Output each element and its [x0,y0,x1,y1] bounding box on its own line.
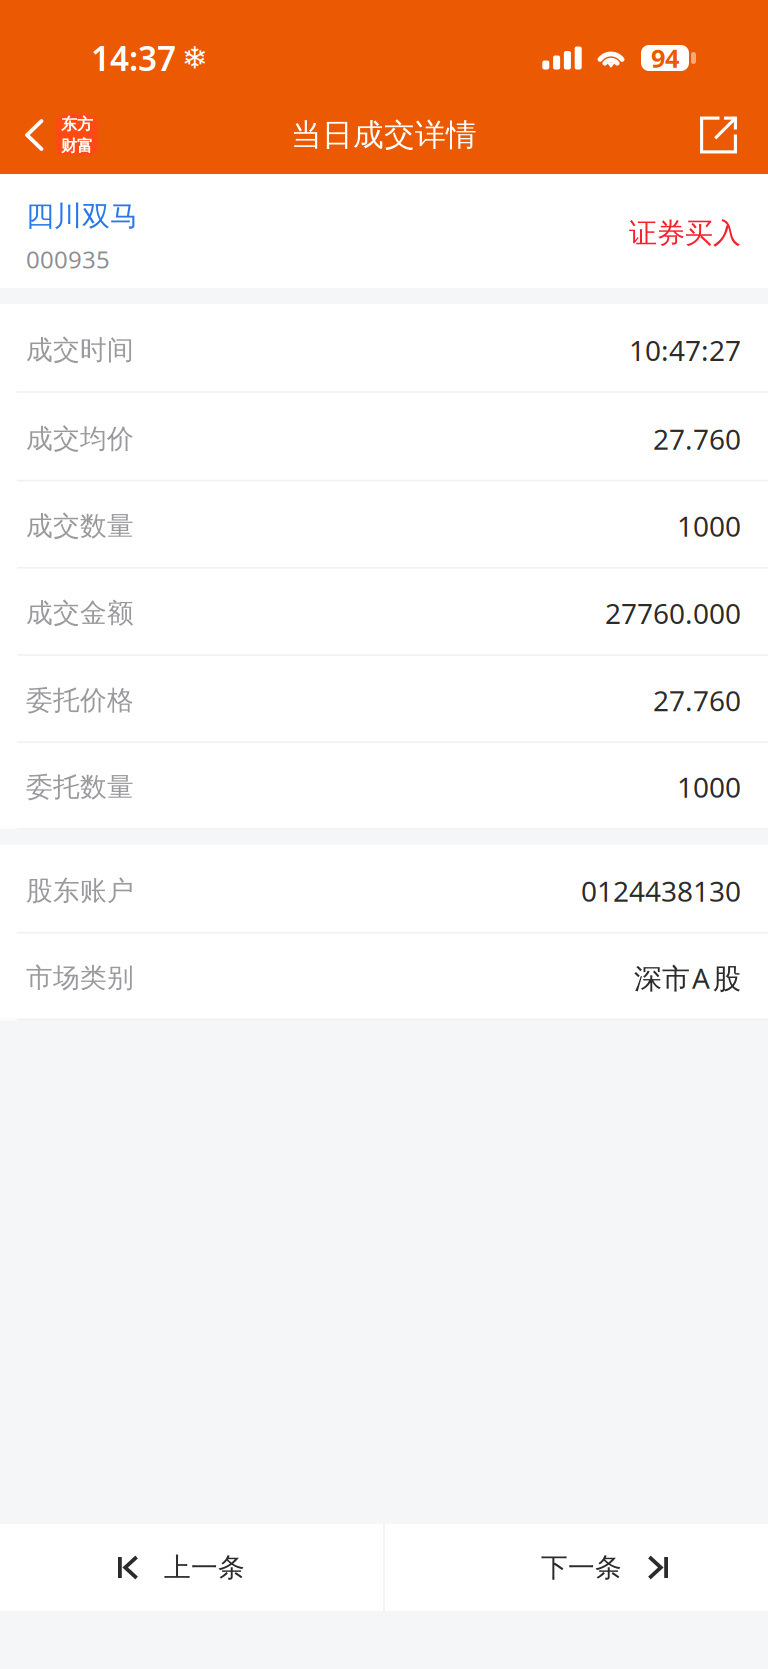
staticText: 股东账户 [26,874,134,907]
staticText: 0124438130 [581,872,741,909]
staticText: 下一条 [541,1551,622,1584]
staticText: 当日成交详情 [291,116,477,154]
staticText: 成交金额 [26,597,134,630]
staticText: 委托价格 [26,684,134,717]
button[interactable]: 分享 [680,96,768,174]
staticText: 成交均价 [26,422,134,455]
staticText: 1000 [677,768,741,806]
staticText: 000935 [26,243,110,275]
staticText: 委托数量 [26,771,134,803]
staticText: 成交时间 [26,334,134,367]
staticText: 财富 [61,136,93,156]
staticText: 27.760 [653,682,741,719]
staticText: 深市 A 股 [634,959,741,996]
staticText: 94 [651,41,679,75]
staticText: 27760.000 [605,595,741,632]
staticText: 10:47:27 [629,332,741,369]
button[interactable]: 返回 东方财富 [0,96,108,174]
staticText: 1000 [677,507,741,545]
staticText: 证券买入 [629,216,741,250]
staticText: 市场类别 [26,961,134,994]
staticText: 14:37 [91,36,176,80]
staticText: 东方 [61,114,93,134]
staticText: 27.760 [653,420,741,457]
staticText: 上一条 [164,1551,245,1584]
staticText: 四川双马 [26,199,138,233]
staticText: 成交数量 [26,510,134,542]
staticText: ❄ [182,41,208,75]
button[interactable]: 上一条 [0,1524,383,1611]
button[interactable]: 下一条 [385,1524,768,1611]
